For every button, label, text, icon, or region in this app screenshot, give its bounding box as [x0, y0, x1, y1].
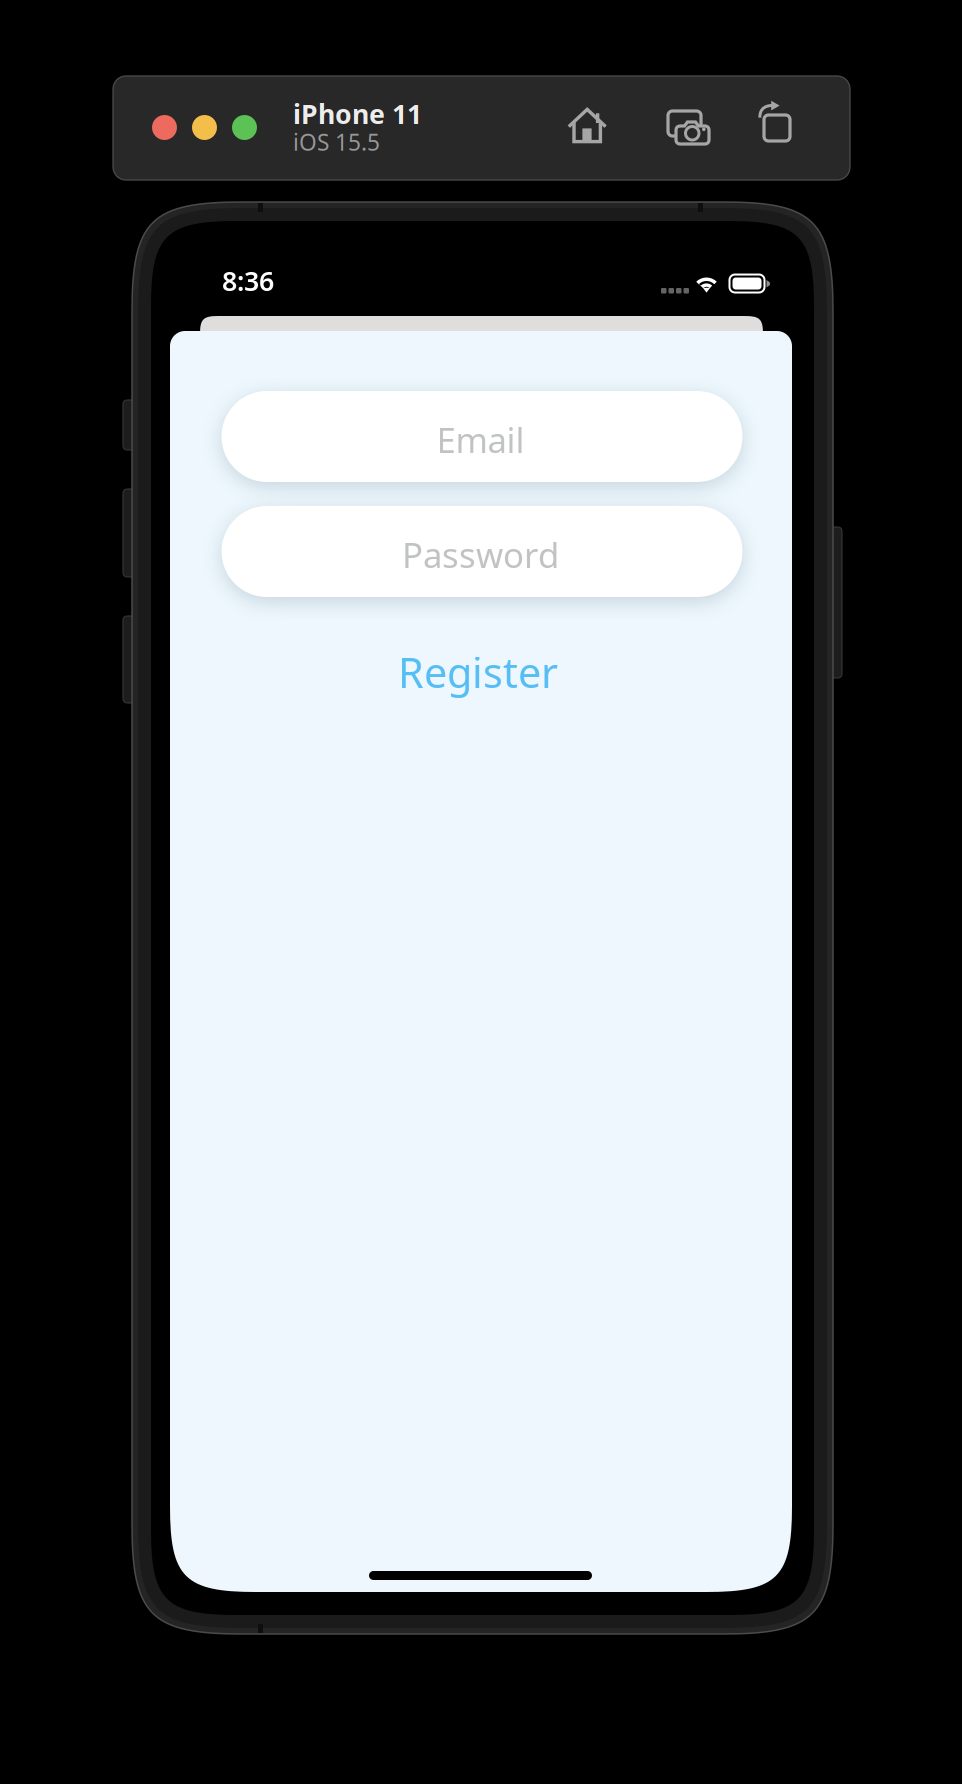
- button[interactable]: Rotate device: [758, 103, 791, 141]
- staticText: iPhone 11: [293, 96, 422, 131]
- staticText: 8:36: [222, 263, 274, 298]
- staticText: iOS 15.5: [293, 127, 380, 157]
- button[interactable]: Password: [221, 506, 742, 597]
- button[interactable]: Register: [368, 647, 588, 697]
- staticText: Email: [436, 416, 524, 462]
- button[interactable]: Email: [221, 391, 742, 482]
- staticText: Register: [398, 645, 558, 699]
- staticText: Password: [402, 531, 559, 577]
- button[interactable]: Screenshot: [668, 111, 712, 147]
- button[interactable]: Home: [567, 107, 606, 144]
